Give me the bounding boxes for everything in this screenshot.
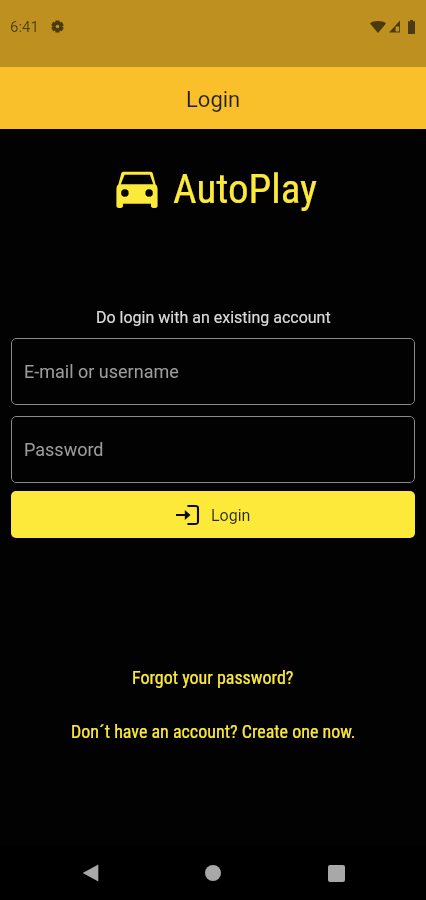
button[interactable]: Back xyxy=(66,849,114,897)
staticText: Password xyxy=(24,439,104,460)
button[interactable]: Forgot your password? xyxy=(132,667,294,688)
button[interactable]: Home xyxy=(189,849,237,897)
staticText: AutoPlay xyxy=(173,165,318,213)
staticText: Login xyxy=(186,87,241,113)
other: Settings xyxy=(51,20,64,33)
staticText: 6:41 xyxy=(10,18,39,36)
staticText: Login xyxy=(211,506,251,525)
staticText: Don´t have an account? Create one now. xyxy=(71,721,356,742)
staticText: Do login with an existing account xyxy=(96,308,331,327)
button[interactable]: E-mail or username xyxy=(11,338,415,405)
staticText: E-mail or username xyxy=(24,361,179,382)
button[interactable]: Password xyxy=(11,416,415,483)
button[interactable]: Login xyxy=(11,491,415,538)
button[interactable]: Recent apps xyxy=(312,849,360,897)
button[interactable]: Don´t have an account? Create one now. xyxy=(71,721,356,742)
staticText: Forgot your password? xyxy=(132,667,294,688)
